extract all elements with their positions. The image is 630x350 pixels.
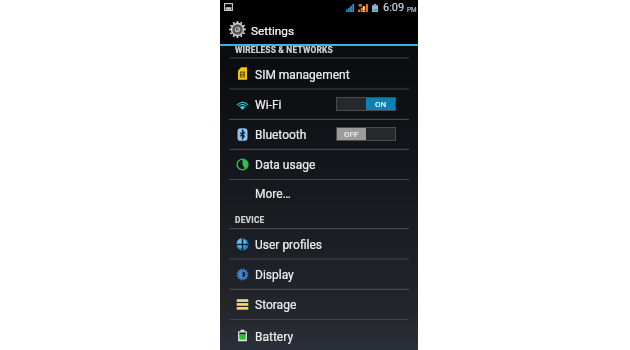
staticText: DEVICE [235, 215, 265, 225]
staticText: WIRELESS & NETWORKS [235, 45, 333, 55]
staticText: Data usage [255, 158, 316, 172]
other: Settings [229, 21, 246, 38]
staticText: OFF [344, 130, 359, 139]
button[interactable]: OFF [336, 127, 396, 141]
staticText: ON [375, 100, 387, 109]
staticText: Storage [255, 298, 297, 312]
button[interactable]: Settings [220, 14, 418, 44]
button[interactable]: Display [220, 259, 418, 289]
button[interactable]: Storage [220, 289, 418, 319]
staticText: User profiles [255, 238, 323, 252]
button[interactable]: User profiles [220, 229, 418, 259]
button[interactable]: SIM management [220, 58, 418, 89]
button[interactable]: Wi-Fi [220, 89, 418, 119]
staticText: Bluetooth [255, 128, 307, 142]
staticText: PM [407, 6, 417, 14]
staticText: Wi-Fi [255, 98, 282, 112]
staticText: 6:09 [383, 1, 405, 14]
button[interactable]: Bluetooth [220, 119, 418, 149]
staticText: Settings [251, 24, 295, 38]
staticText: Display [255, 268, 294, 282]
staticText: Battery [255, 330, 294, 344]
staticText: More… [255, 187, 291, 201]
staticText: SIM management [255, 68, 350, 82]
button[interactable]: Battery [220, 320, 418, 350]
button[interactable]: ON [336, 97, 396, 111]
button[interactable]: Data usage [220, 149, 418, 179]
button[interactable]: More… [220, 180, 418, 206]
